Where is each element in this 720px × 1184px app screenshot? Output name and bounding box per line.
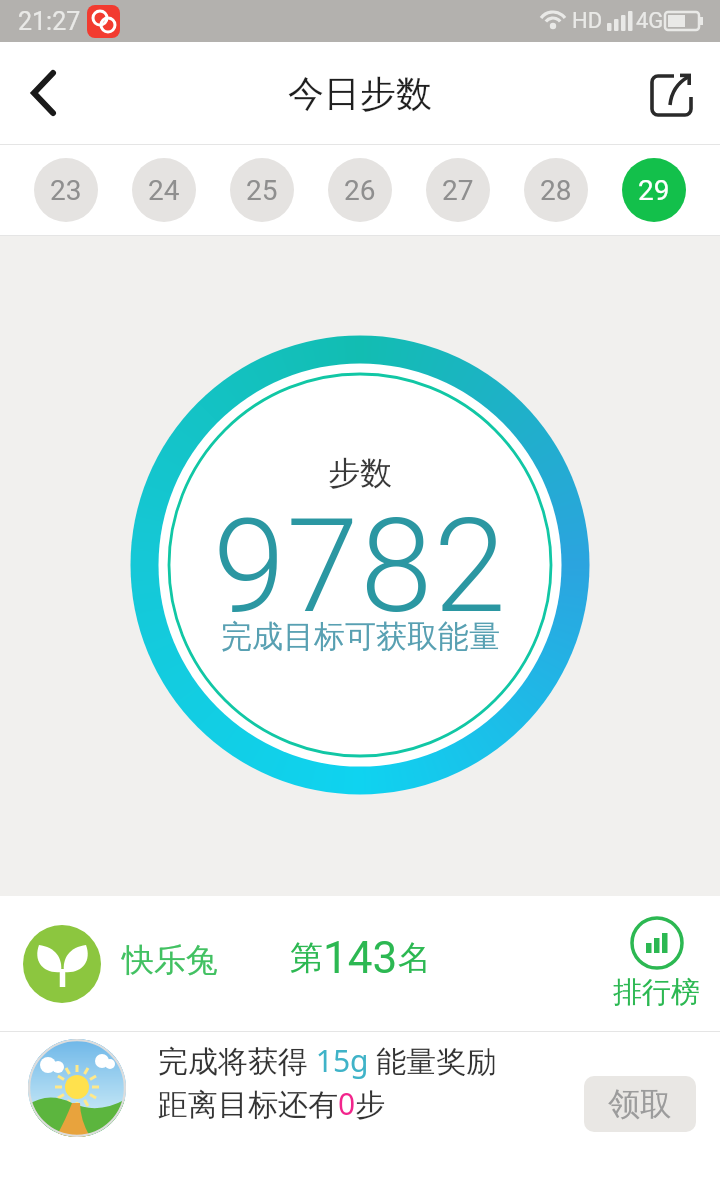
button[interactable]: 24 (132, 158, 196, 222)
staticText: 名 (398, 937, 431, 979)
button[interactable]: 26 (328, 158, 392, 222)
staticText: 今日步数 (288, 71, 432, 116)
staticText: 21:27 (18, 7, 81, 36)
staticText: 27 (442, 174, 474, 207)
button[interactable]: 29 (622, 158, 686, 222)
staticText: 26 (344, 174, 376, 207)
staticText: 23 (50, 174, 82, 207)
staticText: 领取 (608, 1084, 672, 1124)
staticText: 完成将获得 15g 能量奖励 (158, 1040, 497, 1081)
staticText: 143 (323, 932, 398, 984)
staticText: 25 (246, 174, 278, 207)
staticText: 4G (636, 8, 664, 34)
staticText: 距离目标还有0步 (158, 1083, 386, 1124)
staticText: HD (572, 8, 603, 34)
button[interactable]: 28 (524, 158, 588, 222)
staticText: 29 (638, 174, 670, 207)
staticText: 第 (290, 937, 323, 979)
staticText: 28 (540, 174, 572, 207)
button[interactable]: 领取 (584, 1076, 696, 1132)
button[interactable]: 25 (230, 158, 294, 222)
staticText: 24 (148, 174, 180, 207)
button[interactable]: 23 (34, 158, 98, 222)
staticText: 完成目标可获取能量 (221, 617, 500, 656)
button[interactable] (23, 925, 101, 1003)
button[interactable]: 排行榜 (613, 916, 700, 1011)
staticText: 9782 (213, 490, 508, 642)
button[interactable] (630, 42, 720, 144)
staticText: 步数 (328, 453, 392, 493)
staticText: 快乐兔 (122, 940, 218, 980)
staticText: 排行榜 (613, 974, 700, 1011)
button[interactable]: 27 (426, 158, 490, 222)
button[interactable] (0, 42, 80, 144)
